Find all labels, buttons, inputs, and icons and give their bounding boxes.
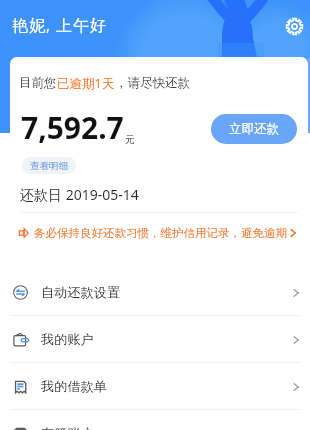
staticText: 还款日 2019-05-14 xyxy=(20,185,139,204)
button[interactable]: 我的借款单 xyxy=(0,363,310,410)
staticText: 目前您 xyxy=(19,75,57,91)
button[interactable]: 我的账户 xyxy=(0,316,310,363)
staticText: 艳妮, 上午好 xyxy=(12,14,107,36)
staticText: 我的借款单 xyxy=(41,378,107,395)
staticText: 立即还款 xyxy=(229,121,279,137)
staticText: 务必保持良好还款习惯，维护信用记录，避免逾期 xyxy=(34,226,287,240)
staticText: 我的账户 xyxy=(41,331,94,348)
button[interactable]: 查看明细 xyxy=(22,157,76,174)
staticText: 查看明细 xyxy=(30,160,68,172)
button[interactable]: 存管账户 xyxy=(0,410,310,430)
button[interactable]: 立即还款 xyxy=(211,114,297,144)
staticText: 存管账户 xyxy=(41,425,94,430)
staticText: ，请尽快还款 xyxy=(115,75,190,91)
button[interactable]: 务必保持良好还款习惯，维护信用记录，避免逾期 xyxy=(10,213,308,252)
staticText: 已逾期1天 xyxy=(57,75,115,92)
staticText: 元 xyxy=(125,133,135,146)
button[interactable]: Settings xyxy=(282,14,306,38)
staticText: 自动还款设置 xyxy=(41,284,121,301)
staticText: 7,592.7 xyxy=(21,107,124,148)
button[interactable]: 自动还款设置 xyxy=(0,269,310,316)
